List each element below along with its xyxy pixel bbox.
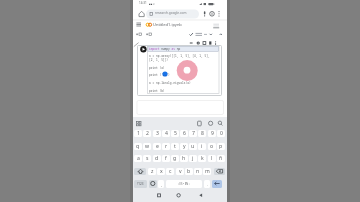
button[interactable]: 3 <box>153 130 161 137</box>
button[interactable]: ñ <box>217 155 225 162</box>
staticText: o <box>210 143 214 150</box>
staticText: z <box>151 168 154 175</box>
button[interactable]: h <box>180 155 188 162</box>
staticText: r <box>165 143 168 150</box>
staticText: m <box>205 168 210 175</box>
staticText: i <box>201 143 203 150</box>
button[interactable]: m <box>203 168 211 175</box>
staticText: n <box>196 168 200 175</box>
button[interactable]: v <box>176 168 184 175</box>
staticText: x <box>160 168 163 175</box>
button[interactable]: 9 <box>208 130 216 137</box>
button[interactable]: q <box>134 143 142 150</box>
staticText: b <box>187 168 191 175</box>
staticText: v <box>179 168 182 175</box>
button[interactable]: 4 <box>162 130 170 137</box>
staticText: a = np.linalg.eigvals(a) <box>149 81 191 85</box>
button[interactable]: r <box>162 143 170 150</box>
staticText: f <box>165 155 167 162</box>
staticText: 3 <box>156 130 159 137</box>
button[interactable]: 1 <box>134 130 142 137</box>
staticText: j <box>192 155 194 162</box>
button[interactable]: u <box>189 143 197 150</box>
button[interactable]: b <box>185 168 193 175</box>
staticText: a <box>137 155 140 162</box>
staticText: 1 <box>137 130 140 137</box>
button[interactable]: j <box>189 155 197 162</box>
staticText: 8 <box>201 130 204 137</box>
staticText: [2, 1, 5]]) <box>149 58 169 62</box>
button[interactable]: 0 <box>217 130 225 137</box>
button[interactable]: f <box>162 155 170 162</box>
button[interactable]: x <box>157 168 165 175</box>
button[interactable]: d <box>153 155 161 162</box>
button[interactable]: s <box>143 155 151 162</box>
staticText: q <box>136 143 140 150</box>
staticText: 9 <box>211 130 214 137</box>
button[interactable]: o <box>208 143 216 150</box>
button[interactable]: p <box>217 143 225 150</box>
staticText: w <box>145 143 150 150</box>
button[interactable]: e <box>153 143 161 150</box>
button[interactable]: 8 <box>198 130 206 137</box>
staticText: t <box>174 143 176 150</box>
staticText: 2 <box>146 130 149 137</box>
button[interactable]: w <box>143 143 151 150</box>
staticText: print ('--') <box>149 73 170 77</box>
button[interactable]: ?123 <box>134 180 147 188</box>
staticText: y <box>183 143 186 150</box>
button[interactable]: z <box>148 168 156 175</box>
staticText: print (a) <box>149 66 165 70</box>
staticText: 6 <box>183 130 186 137</box>
button[interactable]: 6 <box>180 130 188 137</box>
staticText: ñ <box>219 155 223 162</box>
staticText: , <box>161 182 162 187</box>
staticText: import numpy as np <box>149 47 181 51</box>
button[interactable]: ‹ ES • EN › <box>166 180 202 188</box>
staticText: print (b) <box>149 89 165 93</box>
button[interactable]: n <box>194 168 202 175</box>
staticText: 5 <box>174 130 177 137</box>
button[interactable] <box>146 10 199 19</box>
button[interactable]: a <box>134 155 142 162</box>
button[interactable] <box>134 168 146 175</box>
button[interactable] <box>149 180 157 188</box>
button[interactable]: l <box>208 155 216 162</box>
staticText: ?123 <box>137 182 144 186</box>
staticText: a = np.array([[1, 1, 5], [4, 1, 5], <box>149 54 210 58</box>
staticText: 4 <box>165 130 168 137</box>
button[interactable]: . <box>204 180 210 188</box>
staticText: u <box>191 143 195 150</box>
staticText: s <box>146 155 149 162</box>
staticText: research.google.com <box>155 11 187 15</box>
button[interactable]: g <box>171 155 179 162</box>
staticText: 0 <box>220 130 223 137</box>
button[interactable]: 7 <box>189 130 197 137</box>
staticText: k <box>201 155 204 162</box>
staticText: h <box>182 155 186 162</box>
button[interactable] <box>214 168 225 175</box>
staticText: Untitled1.ipynb <box>153 22 182 27</box>
button[interactable] <box>212 180 222 188</box>
staticText: ‹ ES • EN › <box>178 182 190 186</box>
button[interactable]: 2 <box>143 130 151 137</box>
button[interactable]: i <box>198 143 206 150</box>
staticText: e <box>156 143 159 150</box>
staticText: 14:31 <box>139 1 147 5</box>
staticText: g <box>173 155 177 162</box>
staticText: 7 <box>192 130 195 137</box>
button[interactable]: , <box>158 180 164 188</box>
staticText: d <box>155 155 159 162</box>
button[interactable]: k <box>198 155 206 162</box>
staticText: l <box>211 155 213 162</box>
button[interactable]: 5 <box>171 130 179 137</box>
button[interactable]: t <box>171 143 179 150</box>
button[interactable]: y <box>180 143 188 150</box>
staticText: ▪▪ ▾ <box>149 2 155 6</box>
staticText: . <box>207 182 208 187</box>
staticText: p <box>219 143 223 150</box>
staticText: c <box>169 168 172 175</box>
button[interactable]: c <box>166 168 174 175</box>
